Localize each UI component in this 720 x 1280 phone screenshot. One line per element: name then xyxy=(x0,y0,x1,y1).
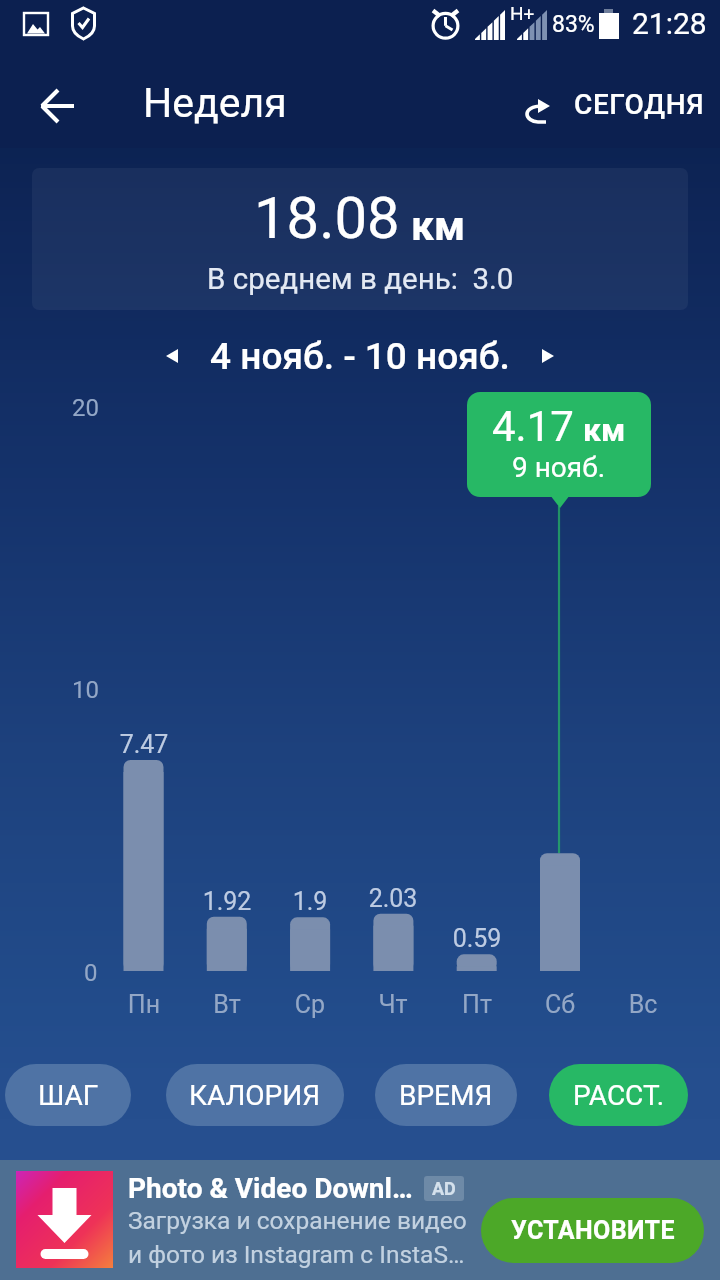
staticText: 9 нояб. xyxy=(512,451,606,484)
button[interactable]: РАССТ. xyxy=(549,1064,688,1126)
staticText: Вс xyxy=(583,990,703,1019)
staticText: СЕГОДНЯ xyxy=(574,88,705,121)
staticText: H+ xyxy=(510,2,535,24)
staticText: 0 xyxy=(84,959,98,987)
staticText: ВРЕМЯ xyxy=(399,1079,493,1112)
button[interactable]: Сб xyxy=(500,990,620,1019)
button[interactable]: КАЛОРИЯ xyxy=(166,1064,344,1126)
staticText: 2.03 xyxy=(333,884,453,913)
staticText: Ср xyxy=(250,990,370,1019)
button[interactable]: Вт xyxy=(167,990,287,1019)
staticText: 0.59 xyxy=(417,924,537,953)
staticText: км xyxy=(583,411,626,449)
staticText: 4.17 xyxy=(492,402,574,451)
staticText: Чт xyxy=(333,990,453,1019)
staticText: 10 xyxy=(72,676,99,704)
staticText: Сб xyxy=(500,990,620,1019)
button[interactable]: 4.17 xyxy=(467,392,651,497)
button[interactable]: СЕГОДНЯ xyxy=(516,76,705,132)
staticText: 21:28 xyxy=(632,6,707,41)
button[interactable]: ВРЕМЯ xyxy=(375,1064,517,1126)
staticText: Неделя xyxy=(143,79,287,127)
staticText: 18.08 xyxy=(254,184,400,252)
staticText: AD xyxy=(432,1178,456,1199)
button[interactable]: Вс xyxy=(583,990,703,1019)
staticText: В среднем в день: 3.0 xyxy=(207,262,514,297)
staticText: РАССТ. xyxy=(573,1079,665,1112)
staticText: Загрузка и сохранение видео xyxy=(128,1206,467,1235)
button[interactable]: Ср xyxy=(250,990,370,1019)
button[interactable]: Пн xyxy=(84,990,204,1019)
staticText: КАЛОРИЯ xyxy=(189,1079,321,1112)
staticText: 1.9 xyxy=(250,887,370,916)
staticText: км xyxy=(411,202,466,250)
staticText: Вт xyxy=(167,990,287,1019)
button[interactable]: УСТАНОВИТЕ xyxy=(481,1198,704,1263)
button[interactable]: 18.08 xyxy=(32,168,688,310)
staticText: и фото из Instagram с InstaS… xyxy=(128,1240,465,1269)
staticText: 7.47 xyxy=(84,730,204,759)
staticText: Пн xyxy=(84,990,204,1019)
staticText: 83% xyxy=(552,11,595,38)
staticText: 1.92 xyxy=(167,887,287,916)
staticText: Пт xyxy=(417,990,537,1019)
button[interactable]: Чт xyxy=(333,990,453,1019)
button[interactable]: Пт xyxy=(417,990,537,1019)
button[interactable]: Previous week xyxy=(154,328,210,384)
staticText: ШАГ xyxy=(38,1079,99,1112)
button[interactable]: Next week xyxy=(510,328,566,384)
staticText: УСТАНОВИТЕ xyxy=(511,1216,675,1245)
button[interactable]: Back xyxy=(32,73,96,137)
button[interactable]: ШАГ xyxy=(5,1064,131,1126)
staticText: Photo & Video Downl… xyxy=(128,1172,413,1205)
staticText: 4 нояб. - 10 нояб. xyxy=(210,335,510,378)
staticText: 20 xyxy=(72,394,99,422)
